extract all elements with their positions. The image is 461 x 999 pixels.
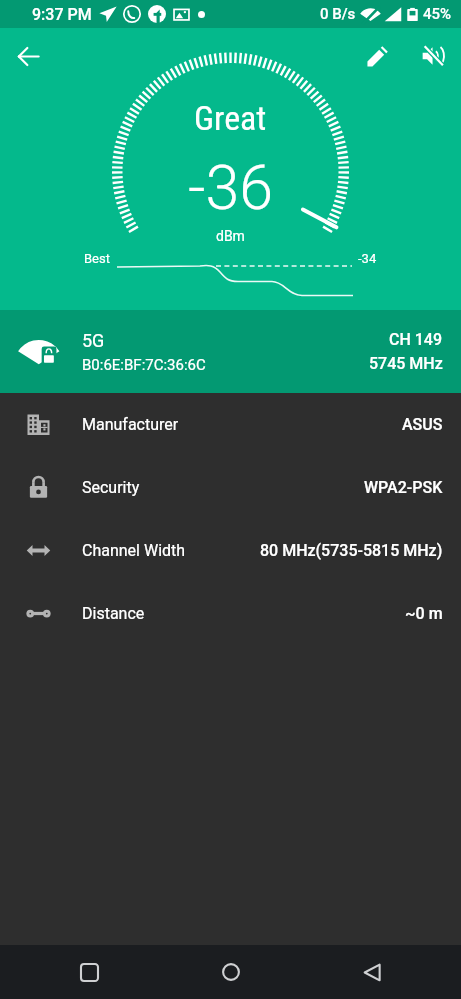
staticText: Great bbox=[194, 98, 267, 138]
button[interactable]: Distance bbox=[0, 582, 461, 645]
staticText: 0 B/s bbox=[320, 5, 356, 23]
staticText: 9:37 PM bbox=[32, 5, 92, 24]
button[interactable]: Security bbox=[0, 456, 461, 519]
button[interactable]: Back bbox=[345, 945, 399, 999]
button[interactable]: Back bbox=[0, 28, 56, 84]
button[interactable]: Home bbox=[204, 945, 258, 999]
button[interactable]: Channel Width bbox=[0, 519, 461, 582]
staticText: Distance bbox=[82, 604, 145, 623]
button[interactable]: 5G bbox=[0, 310, 461, 393]
staticText: CH 149 bbox=[389, 330, 443, 349]
staticText: Security bbox=[82, 478, 140, 497]
button[interactable]: Recent apps bbox=[62, 945, 116, 999]
staticText: 5745 MHz bbox=[369, 354, 443, 373]
staticText: -34 bbox=[358, 251, 377, 266]
staticText: Best bbox=[84, 251, 110, 266]
staticText: 45% bbox=[423, 5, 452, 23]
staticText: -36 bbox=[188, 152, 274, 223]
staticText: ASUS bbox=[402, 415, 443, 434]
staticText: Channel Width bbox=[82, 541, 186, 560]
button[interactable]: Mute notifications bbox=[405, 28, 461, 84]
staticText: B0:6E:BF:7C:36:6C bbox=[82, 356, 206, 374]
staticText: WPA2-PSK bbox=[364, 478, 443, 497]
button[interactable]: Edit bbox=[349, 28, 405, 84]
staticText: Manufacturer bbox=[82, 415, 179, 434]
staticText: ~0 m bbox=[405, 604, 443, 623]
staticText: dBm bbox=[216, 228, 245, 244]
button[interactable]: Manufacturer bbox=[0, 393, 461, 456]
staticText: 80 MHz(5735-5815 MHz) bbox=[260, 541, 443, 560]
staticText: 5G bbox=[82, 330, 105, 351]
